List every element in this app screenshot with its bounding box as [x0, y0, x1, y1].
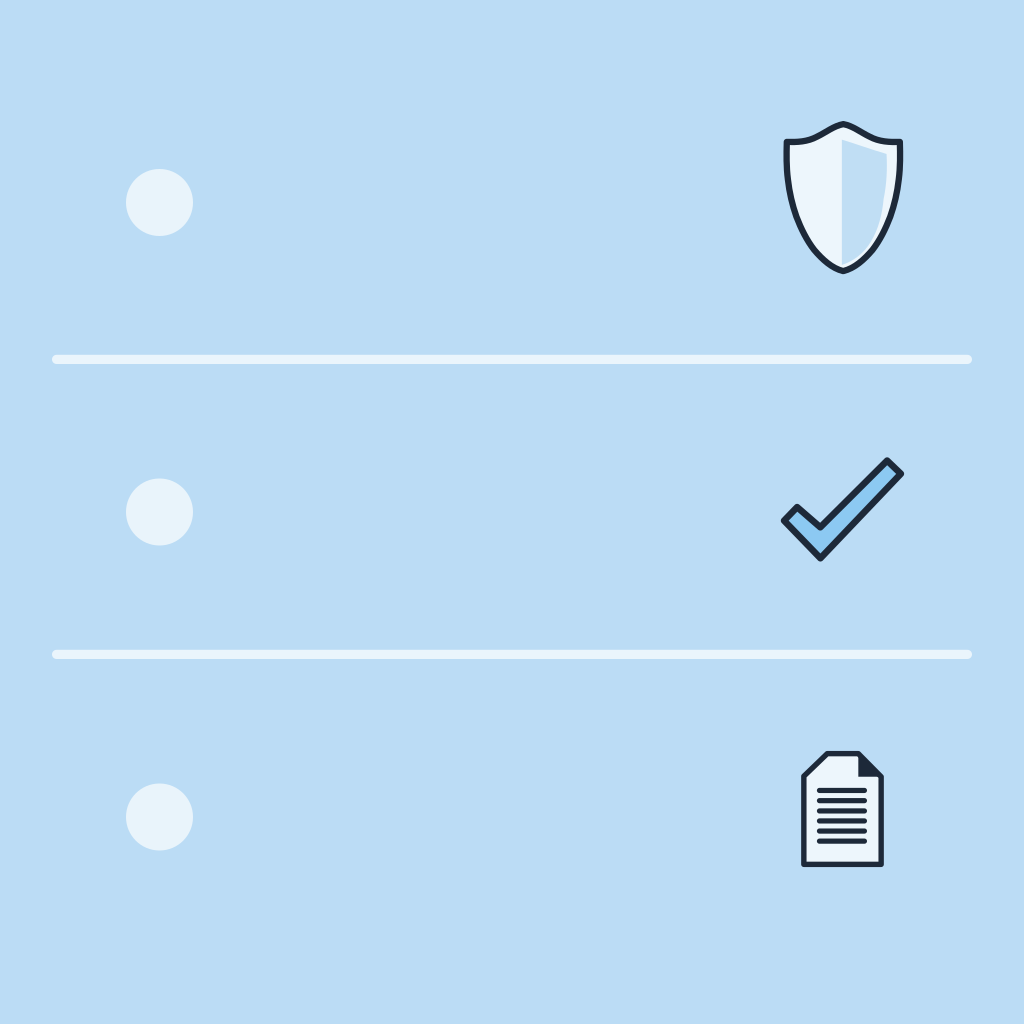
button[interactable]: Security	[0, 0, 1024, 355]
button[interactable]: Verified	[0, 364, 1024, 650]
button[interactable]: Documents	[0, 659, 1024, 1024]
